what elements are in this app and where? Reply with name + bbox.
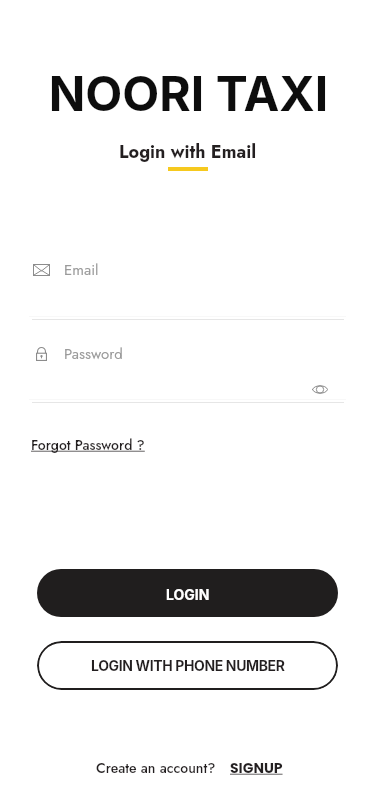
button[interactable]: Password: [32, 342, 343, 366]
button[interactable]: LOGIN WITH PHONE NUMBER: [37, 641, 338, 690]
staticText: Create an account?: [96, 758, 216, 778]
staticText: LOGIN: [166, 586, 210, 603]
staticText: NOORI TAXI: [1, 64, 375, 122]
staticText: Password: [64, 343, 123, 365]
button[interactable]: SIGNUP: [230, 758, 283, 778]
staticText: LOGIN WITH PHONE NUMBER: [91, 657, 285, 674]
staticText: Email: [64, 259, 99, 281]
button[interactable]: Forgot Password ?: [31, 435, 145, 455]
button[interactable]: Show password: [308, 377, 332, 401]
button[interactable]: LOGIN: [37, 569, 338, 617]
button[interactable]: Email: [32, 258, 343, 282]
staticText: Login with Email: [0, 139, 375, 165]
